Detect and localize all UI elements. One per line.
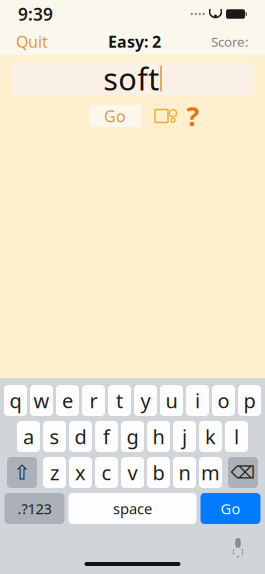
staticText: .?123: [17, 499, 51, 518]
staticText: 9:39: [18, 2, 53, 25]
button[interactable]: v: [121, 457, 144, 488]
button[interactable]: a: [17, 421, 40, 452]
button[interactable]: x: [69, 457, 92, 488]
staticText: Easy: 2: [108, 31, 161, 52]
staticText: s: [49, 423, 59, 450]
button[interactable]: c: [95, 457, 118, 488]
staticText: h: [152, 423, 164, 450]
staticText: Score:: [211, 33, 249, 50]
button[interactable]: r: [82, 385, 105, 416]
button[interactable]: i: [186, 385, 209, 416]
staticText: space: [113, 499, 152, 518]
staticText: e: [62, 387, 73, 414]
staticText: soft: [103, 58, 159, 99]
button[interactable]: u: [160, 385, 183, 416]
staticText: f: [103, 423, 110, 450]
button[interactable]: l: [225, 421, 248, 452]
staticText: o: [217, 387, 229, 414]
staticText: m: [201, 459, 220, 486]
button[interactable]: y: [134, 385, 157, 416]
button[interactable]: Shift: [7, 457, 37, 488]
staticText: Go: [220, 499, 240, 518]
button[interactable]: space: [68, 493, 196, 524]
button[interactable]: .?123: [4, 493, 64, 524]
staticText: r: [89, 387, 97, 414]
staticText: u: [165, 387, 177, 414]
staticText: d: [74, 423, 86, 450]
staticText: n: [178, 459, 190, 486]
button[interactable]: e: [56, 385, 79, 416]
staticText: ⌫: [230, 463, 255, 482]
button[interactable]: s: [43, 421, 66, 452]
button[interactable]: k: [199, 421, 222, 452]
button[interactable]: z: [43, 457, 66, 488]
button[interactable]: Quit: [16, 26, 58, 57]
staticText: t: [116, 387, 123, 414]
staticText: w: [33, 387, 49, 414]
button[interactable]: f: [95, 421, 118, 452]
button[interactable]: g: [121, 421, 144, 452]
staticText: y: [140, 387, 150, 414]
staticText: z: [50, 459, 59, 486]
button[interactable]: q: [4, 385, 27, 416]
staticText: x: [75, 459, 86, 486]
button[interactable]: w: [30, 385, 53, 416]
staticText: ?: [186, 98, 199, 134]
button[interactable]: Delete: [228, 457, 258, 488]
staticText: v: [127, 459, 137, 486]
staticText: p: [243, 387, 255, 414]
staticText: g: [126, 423, 138, 450]
staticText: ⇧: [13, 461, 30, 484]
staticText: l: [234, 423, 239, 450]
staticText: i: [195, 387, 200, 414]
button[interactable]: n: [173, 457, 196, 488]
button[interactable]: m: [199, 457, 222, 488]
button[interactable]: h: [147, 421, 170, 452]
button[interactable]: Dictate: [228, 537, 248, 559]
staticText: a: [23, 423, 34, 450]
staticText: q: [9, 387, 21, 414]
button[interactable]: p: [238, 385, 261, 416]
staticText: j: [182, 423, 187, 450]
button[interactable]: Speak word: [141, 104, 181, 128]
button[interactable]: b: [147, 457, 170, 488]
button[interactable]: o: [212, 385, 235, 416]
button[interactable]: Go: [89, 105, 141, 127]
staticText: Quit: [16, 31, 48, 52]
staticText: c: [101, 459, 111, 486]
staticText: k: [205, 423, 216, 450]
button[interactable]: Help: [181, 104, 203, 128]
button[interactable]: j: [173, 421, 196, 452]
button[interactable]: Go: [200, 493, 260, 524]
staticText: b: [152, 459, 164, 486]
button[interactable]: d: [69, 421, 92, 452]
staticText: Go: [104, 105, 126, 127]
button[interactable]: t: [108, 385, 131, 416]
